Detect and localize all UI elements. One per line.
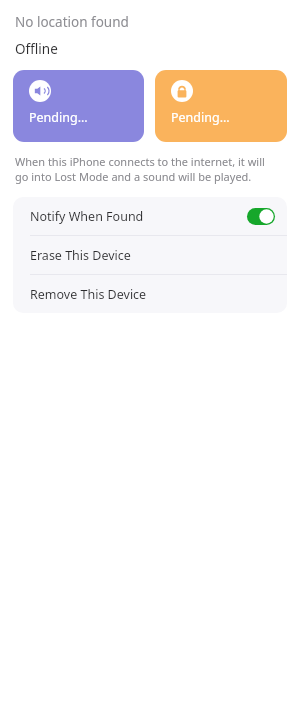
- button[interactable]: Notify When Found: [13, 197, 287, 235]
- staticText: When this iPhone connects to the interne…: [15, 154, 265, 184]
- staticText: Notify When Found: [30, 208, 247, 225]
- button[interactable]: Remove This Device: [13, 275, 287, 313]
- button[interactable]: Play Sound: [13, 70, 144, 142]
- staticText: Erase This Device: [30, 247, 131, 264]
- staticText: Pending...: [171, 109, 230, 126]
- staticText: Pending...: [29, 109, 88, 126]
- button[interactable]: Notify When Found toggle, on: [247, 208, 275, 225]
- staticText: Remove This Device: [30, 286, 147, 303]
- button[interactable]: Mark As Lost: [155, 70, 287, 142]
- staticText: No location found: [15, 13, 129, 31]
- staticText: Offline: [15, 40, 58, 58]
- button[interactable]: Erase This Device: [13, 236, 287, 274]
